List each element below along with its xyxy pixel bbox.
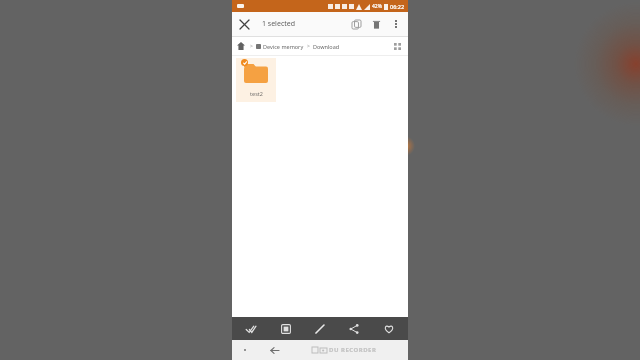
staticText: test2 xyxy=(250,90,263,97)
staticText: 1 selected xyxy=(262,19,296,29)
staticText: 42% xyxy=(372,3,382,10)
button[interactable]: Copy xyxy=(271,317,301,340)
button[interactable]: Rename xyxy=(305,317,335,340)
button[interactable]: test2 xyxy=(236,58,276,102)
button[interactable]: Favourite xyxy=(374,317,404,340)
staticText: Device memory xyxy=(263,43,304,50)
button[interactable]: Back xyxy=(266,342,282,358)
staticText: 06:22 xyxy=(390,3,405,10)
staticText: > xyxy=(250,43,253,50)
button[interactable]: Recents xyxy=(238,343,252,357)
button[interactable]: Home xyxy=(232,37,250,55)
button[interactable]: Download xyxy=(313,43,340,50)
button[interactable]: Close selection xyxy=(232,12,256,36)
button[interactable]: More options xyxy=(386,14,406,34)
button[interactable]: Select all xyxy=(236,317,266,340)
button[interactable]: Device memory xyxy=(256,43,304,50)
staticText: DU RECORDER xyxy=(329,346,377,354)
button[interactable]: Copy xyxy=(346,14,366,34)
button[interactable]: Toggle view xyxy=(388,37,406,55)
staticText: > xyxy=(307,43,310,50)
button[interactable]: Delete xyxy=(366,14,386,34)
button[interactable]: Share xyxy=(339,317,369,340)
